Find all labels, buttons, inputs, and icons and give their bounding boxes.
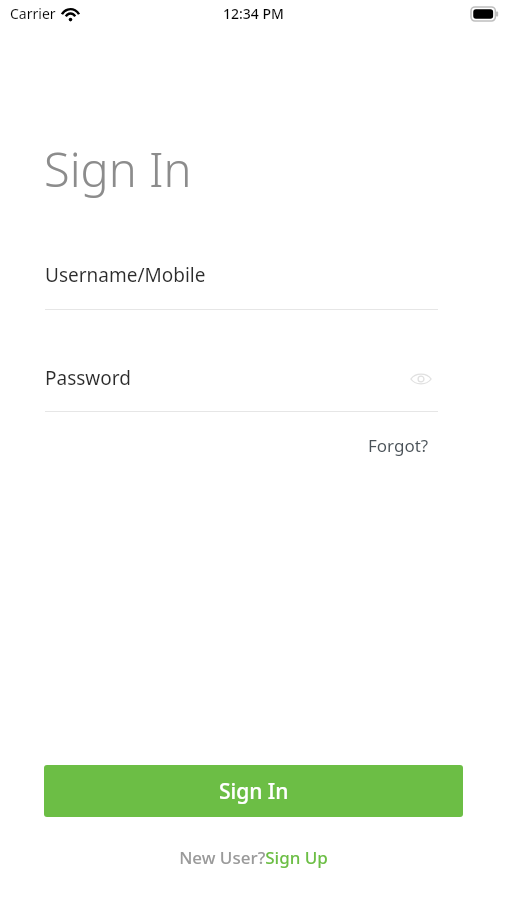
button[interactable]: Password xyxy=(45,365,438,412)
staticText: New User?Sign Up xyxy=(179,846,328,869)
staticText: Username/Mobile xyxy=(45,262,206,288)
staticText: Forgot? xyxy=(368,434,429,457)
button[interactable]: New User?Sign Up xyxy=(179,846,328,869)
button[interactable]: Sign In xyxy=(44,765,463,817)
button[interactable]: Forgot? xyxy=(360,430,437,460)
staticText: Sign In xyxy=(44,137,192,201)
staticText: Carrier xyxy=(10,4,56,23)
button[interactable]: Show password xyxy=(404,365,438,393)
staticText: Password xyxy=(45,365,131,391)
button[interactable]: Username/Mobile xyxy=(45,262,438,310)
staticText: Sign In xyxy=(219,777,289,806)
staticText: 12:34 PM xyxy=(223,4,284,23)
